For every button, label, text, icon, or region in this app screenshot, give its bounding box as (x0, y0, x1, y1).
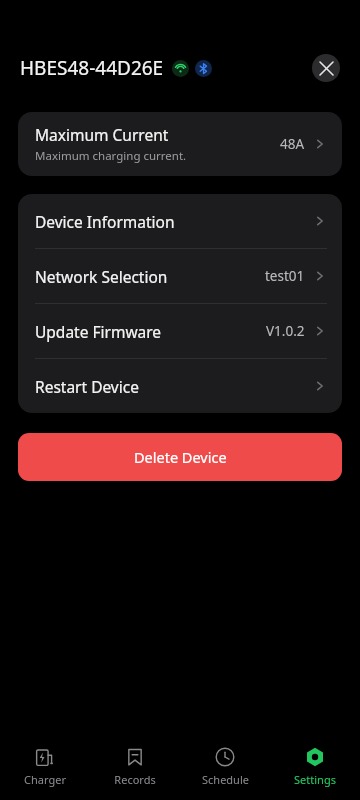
button[interactable]: Restart Device (18, 359, 342, 413)
staticText: 48A (280, 135, 305, 153)
staticText: Maximum Current (35, 124, 169, 145)
staticText: Delete Device (134, 447, 227, 467)
staticText: Restart Device (35, 376, 139, 397)
button[interactable]: Charger (0, 732, 90, 800)
button[interactable]: Settings (270, 732, 360, 800)
other: Bluetooth connected (195, 60, 212, 77)
staticText: HBES48-44D26E (20, 55, 164, 81)
button[interactable]: Update Firmware (18, 304, 342, 358)
button[interactable]: Maximum Current (18, 112, 342, 176)
button[interactable]: Device Information (18, 194, 342, 248)
staticText: Network Selection (35, 266, 168, 287)
button[interactable]: Schedule (180, 732, 270, 800)
staticText: Maximum charging current. (35, 148, 187, 164)
staticText: Schedule (202, 772, 249, 787)
staticText: Records (114, 772, 156, 787)
staticText: Charger (24, 772, 66, 787)
button[interactable]: Network Selection (18, 249, 342, 303)
other: Wi-Fi connected (172, 60, 189, 77)
button[interactable]: Close (312, 54, 340, 82)
staticText: Settings (294, 772, 336, 787)
staticText: Update Firmware (35, 321, 162, 342)
staticText: Device Information (35, 211, 175, 232)
staticText: V1.0.2 (266, 322, 305, 340)
staticText: test01 (265, 267, 305, 285)
button[interactable]: Delete Device (18, 433, 342, 481)
button[interactable]: Records (90, 732, 180, 800)
